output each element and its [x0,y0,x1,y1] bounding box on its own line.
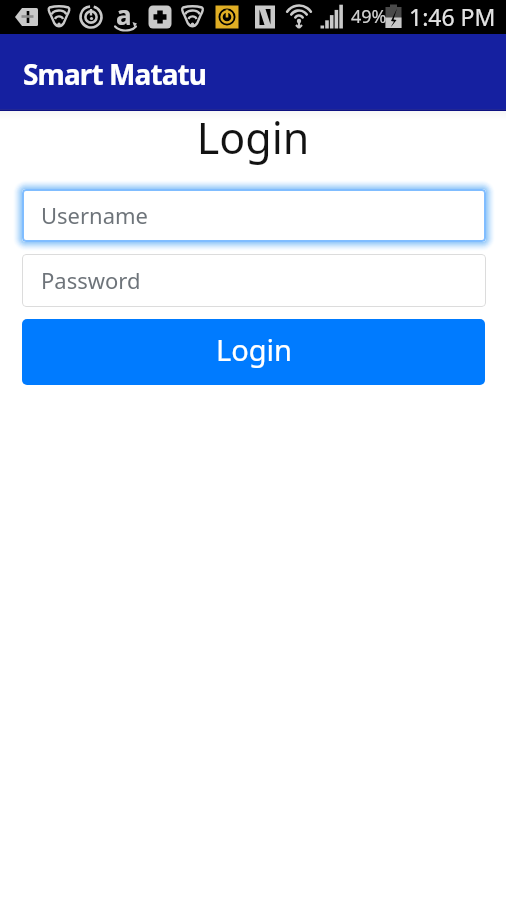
staticText: Login [216,330,292,369]
button[interactable]: Username [22,189,486,242]
staticText: Password [41,265,141,295]
staticText: Smart Matatu [23,55,207,93]
staticText: a [116,0,132,31]
staticText: Login [0,108,506,167]
button[interactable]: Password [22,254,486,307]
staticText: 49% [351,4,387,29]
staticText: 1:46 PM [409,1,496,32]
button[interactable]: Login [22,319,485,385]
staticText: Username [41,200,149,230]
